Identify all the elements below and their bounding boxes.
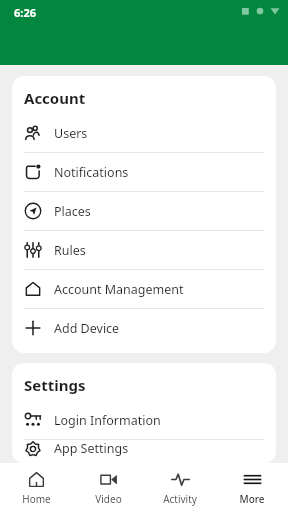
staticText: Activity — [163, 492, 197, 506]
button[interactable]: Users — [12, 114, 276, 153]
button[interactable]: Places — [12, 192, 276, 231]
button[interactable]: Video — [72, 463, 144, 512]
staticText: Users — [54, 125, 88, 142]
staticText: Rules — [54, 242, 86, 259]
button[interactable]: Login Information — [12, 401, 276, 440]
button[interactable]: Add Device — [12, 309, 276, 347]
staticText: 6:26 — [14, 5, 36, 20]
button[interactable]: Account Management — [12, 270, 276, 309]
staticText: Login Information — [54, 412, 161, 429]
staticText: Add Device — [54, 320, 120, 337]
staticText: Notifications — [54, 164, 129, 181]
button[interactable]: App Settings — [12, 440, 276, 457]
button[interactable]: Activity — [144, 463, 216, 512]
staticText: App Settings — [54, 440, 129, 457]
staticText: Video — [95, 492, 122, 506]
staticText: Account — [24, 88, 86, 108]
staticText: Account Management — [54, 281, 184, 298]
staticText: Places — [54, 203, 91, 220]
button[interactable]: More — [216, 463, 288, 512]
staticText: More — [239, 492, 265, 506]
button[interactable]: Rules — [12, 231, 276, 270]
button[interactable]: Home — [0, 463, 72, 512]
button[interactable]: Notifications — [12, 153, 276, 192]
staticText: Home — [22, 492, 51, 506]
staticText: Settings — [24, 375, 86, 395]
